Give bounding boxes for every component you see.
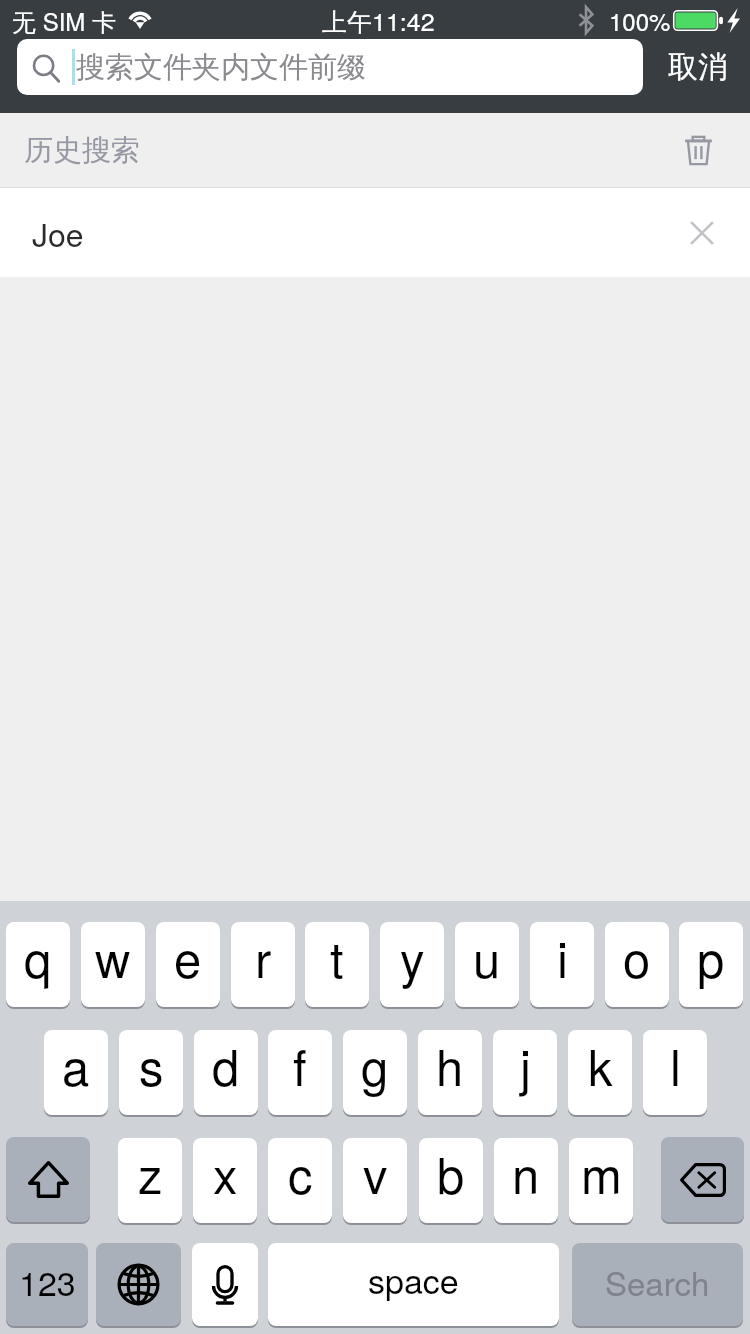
button[interactable]: Search [572, 1243, 743, 1326]
staticText: f [293, 1030, 307, 1100]
staticText: m [581, 1138, 622, 1208]
button[interactable]: 搜索文件夹内文件前缀 [17, 39, 643, 95]
button[interactable]: q [6, 922, 70, 1007]
button[interactable]: Remove [689, 220, 715, 246]
staticText: 123 [19, 1257, 76, 1306]
staticText: a [62, 1030, 90, 1100]
staticText: s [139, 1030, 164, 1100]
staticText: space [368, 1255, 459, 1304]
button[interactable]: y [380, 922, 444, 1007]
button[interactable]: r [231, 922, 295, 1007]
button[interactable]: 历史搜索 [0, 113, 750, 187]
button[interactable]: m [569, 1138, 633, 1223]
staticText: Joe [32, 210, 84, 256]
button[interactable]: u [455, 922, 519, 1007]
button[interactable]: n [494, 1138, 558, 1223]
staticText: 上午11:42 [322, 2, 435, 38]
button[interactable]: Shift [6, 1137, 90, 1222]
staticText: u [473, 922, 501, 992]
staticText: Search [605, 1258, 710, 1305]
button[interactable]: d [194, 1030, 258, 1115]
staticText: p [697, 922, 725, 992]
staticText: l [670, 1030, 681, 1100]
staticText: z [138, 1138, 163, 1208]
button[interactable]: 取消 [662, 39, 734, 95]
button[interactable]: h [418, 1030, 482, 1115]
staticText: d [212, 1030, 240, 1100]
button[interactable]: e [156, 922, 220, 1007]
staticText: j [520, 1030, 531, 1100]
button[interactable]: g [343, 1030, 407, 1115]
button[interactable]: Change keyboard [96, 1243, 181, 1326]
button[interactable]: j [493, 1030, 557, 1115]
staticText: r [255, 922, 272, 992]
staticText: 无 SIM 卡 [12, 3, 117, 38]
staticText: c [288, 1138, 313, 1208]
staticText: t [330, 922, 344, 992]
staticText: y [400, 922, 425, 992]
button[interactable]: v [343, 1138, 407, 1223]
button[interactable]: l [643, 1030, 707, 1115]
button[interactable]: c [268, 1138, 332, 1223]
staticText: 搜索文件夹内文件前缀 [76, 49, 366, 86]
staticText: n [512, 1138, 540, 1208]
button[interactable]: Clear history [684, 136, 713, 165]
staticText: e [174, 922, 202, 992]
button[interactable]: p [679, 922, 743, 1007]
button[interactable]: x [193, 1138, 257, 1223]
button[interactable]: o [605, 922, 669, 1007]
staticText: w [95, 922, 131, 992]
staticText: h [436, 1030, 464, 1100]
button[interactable]: z [118, 1138, 182, 1223]
button[interactable]: 123 [6, 1243, 88, 1326]
staticText: o [623, 922, 651, 992]
button[interactable]: s [119, 1030, 183, 1115]
button[interactable]: space [268, 1243, 559, 1326]
button[interactable]: i [530, 922, 594, 1007]
staticText: q [24, 922, 52, 992]
staticText: 取消 [668, 48, 728, 86]
button[interactable]: Joe [0, 188, 750, 277]
staticText: 历史搜索 [24, 132, 140, 169]
button[interactable]: t [305, 922, 369, 1007]
staticText: v [363, 1138, 388, 1208]
button[interactable]: w [81, 922, 145, 1007]
button[interactable]: b [419, 1138, 483, 1223]
button[interactable]: a [44, 1030, 108, 1115]
button[interactable]: Voice input [192, 1243, 258, 1326]
staticText: g [361, 1030, 389, 1100]
button[interactable]: k [568, 1030, 632, 1115]
button[interactable]: Backspace [661, 1137, 744, 1222]
staticText: i [557, 922, 568, 992]
staticText: 100% [609, 3, 671, 37]
staticText: x [213, 1138, 238, 1208]
staticText: b [437, 1138, 465, 1208]
button[interactable]: f [268, 1030, 332, 1115]
staticText: k [588, 1030, 613, 1100]
